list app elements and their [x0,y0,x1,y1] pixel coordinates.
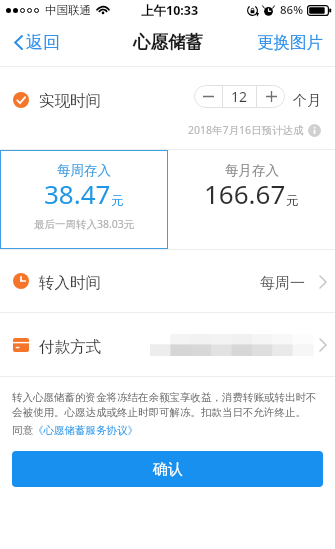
staticText: 最后一周转入38.03元 [34,217,135,231]
staticText: 每周存入 [57,162,111,179]
staticText: 中国联通 [45,3,91,17]
staticText: 心愿储蓄 [133,31,203,53]
staticText: 更换图片 [257,32,323,53]
button[interactable]: 付款方式 [0,313,335,376]
button[interactable]: 更换图片 [246,22,335,63]
button[interactable]: 每月存入 [168,150,335,249]
staticText: 38.47 [44,176,111,211]
button[interactable]: 确认 [12,451,323,487]
button[interactable]: 《心愿储蓄服务协议》 [33,424,138,437]
staticText: 166.67 [204,176,286,211]
staticText: 转入时间 [39,273,101,293]
button[interactable]: 返回 [0,24,72,61]
staticText: 每月存入 [225,162,279,179]
staticText: 86% [280,2,303,18]
staticText: 12 [231,87,248,106]
staticText: 返回 [26,32,60,53]
staticText: 每周一 [260,274,305,293]
button[interactable]: Increase months [257,85,285,108]
button[interactable]: Decrease months [194,85,222,108]
button[interactable]: 每周存入 [0,150,168,249]
staticText: 付款方式 [39,337,101,357]
staticText: 实现时间 [39,91,101,111]
staticText: 元 [286,193,299,209]
staticText: 确认 [153,460,183,479]
staticText: 元 [111,193,124,209]
staticText: 2018年7月16日预计达成 [188,123,304,137]
staticText: 个月 [293,92,321,110]
staticText: 上午10:33 [141,2,199,19]
staticText: 转入心愿储蓄的资金将冻结在余额宝享收益，消费转账或转出时不会被使用。心愿达成或终… [12,391,323,419]
staticText: 《心愿储蓄服务协议》 [33,424,138,437]
button[interactable]: 转入时间 [0,250,335,312]
staticText: 同意 [12,424,33,437]
